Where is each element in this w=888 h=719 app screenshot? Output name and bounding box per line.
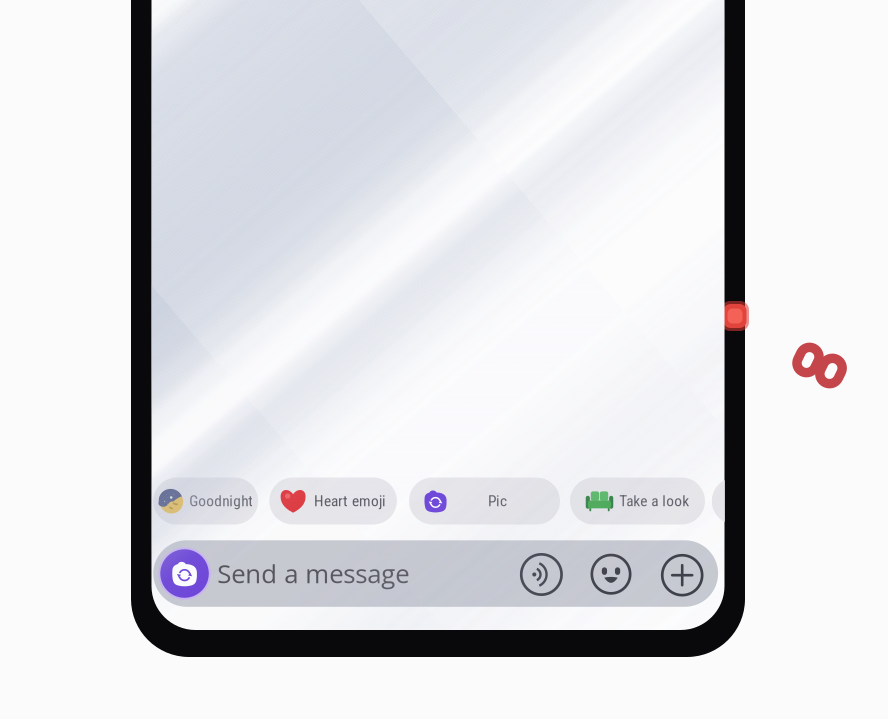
staticText: Goodnight: [189, 492, 253, 510]
button[interactable]: Emoji: [590, 554, 631, 595]
button[interactable]: Heart emoji: [269, 477, 397, 524]
button[interactable]: Goodnight: [153, 477, 258, 524]
staticText: Pic: [488, 492, 507, 510]
button[interactable]: Pic: [409, 477, 560, 524]
button[interactable]: Send audio message: [520, 553, 563, 596]
staticText: Take a look: [619, 492, 689, 510]
button[interactable]: Send a message: [153, 540, 718, 607]
staticText: Heart emoji: [314, 492, 386, 510]
button[interactable]: Add attachment: [661, 554, 703, 596]
staticText: Send a message: [217, 556, 409, 591]
button[interactable]: [712, 477, 792, 524]
button[interactable]: Take a look: [570, 477, 705, 524]
